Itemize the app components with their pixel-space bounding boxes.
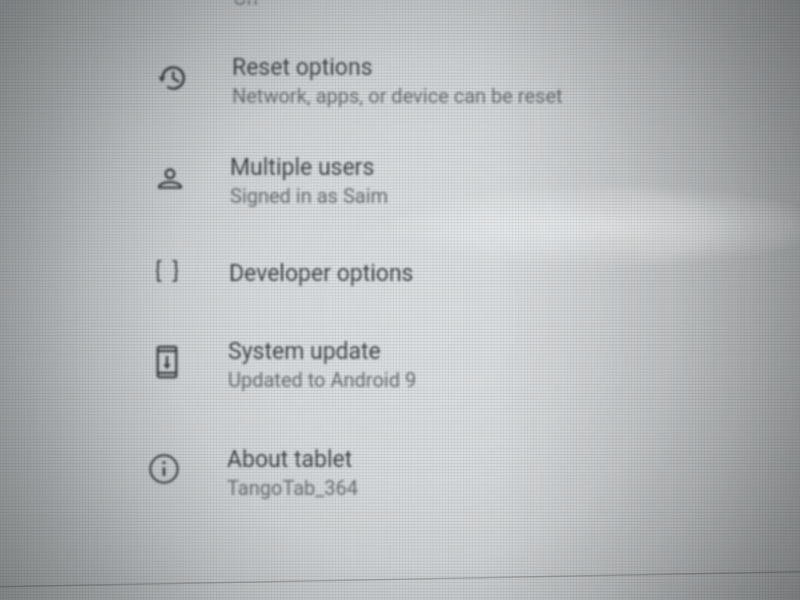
staticText: Developer options <box>229 260 414 287</box>
staticText: System update <box>228 338 381 365</box>
staticText: Network, apps, or device can be reset <box>232 84 563 107</box>
staticText: On <box>233 0 258 9</box>
staticText: About tablet <box>227 446 353 473</box>
button[interactable]: System update <box>0 325 800 405</box>
staticText: Multiple users <box>230 154 375 181</box>
button[interactable]: Developer options <box>0 247 800 305</box>
staticText: Updated to Android 9 <box>228 368 417 391</box>
staticText: Signed in as Saim <box>230 184 389 207</box>
staticText: Reset options <box>232 54 373 81</box>
button[interactable]: About tablet <box>0 433 800 513</box>
button[interactable]: Multiple users <box>0 141 800 221</box>
staticText: TangoTab_364 <box>227 476 359 499</box>
button[interactable]: Reset options <box>0 41 800 121</box>
